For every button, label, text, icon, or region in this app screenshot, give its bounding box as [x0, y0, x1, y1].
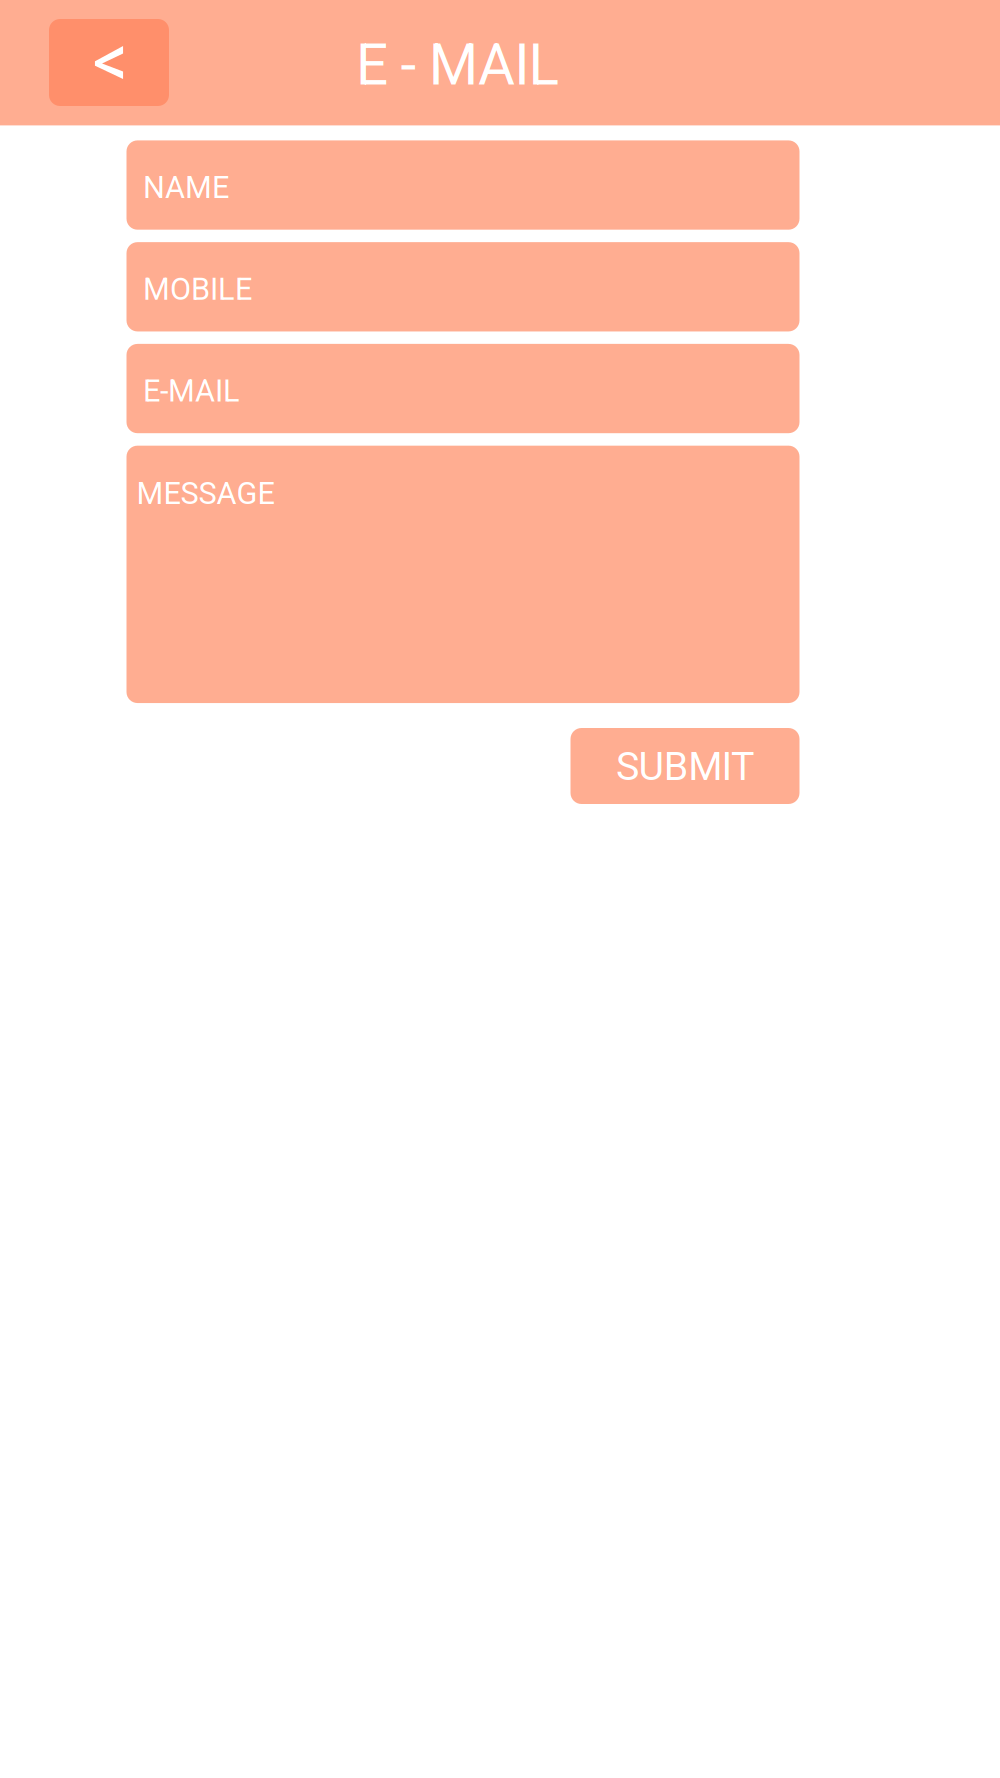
button[interactable]: Back [49, 19, 169, 106]
staticText: MOBILE [143, 271, 252, 307]
staticText: SUBMIT [616, 743, 754, 790]
button[interactable]: MESSAGE [126, 446, 799, 703]
staticText: NAME [143, 170, 229, 205]
button[interactable]: NAME [126, 140, 799, 230]
button[interactable]: MOBILE [126, 242, 799, 331]
button[interactable]: SUBMIT [570, 728, 799, 804]
staticText: E - MAIL [356, 32, 559, 98]
staticText: E-MAIL [143, 373, 240, 409]
button[interactable]: E-MAIL [126, 344, 799, 433]
staticText: MESSAGE [136, 476, 274, 511]
